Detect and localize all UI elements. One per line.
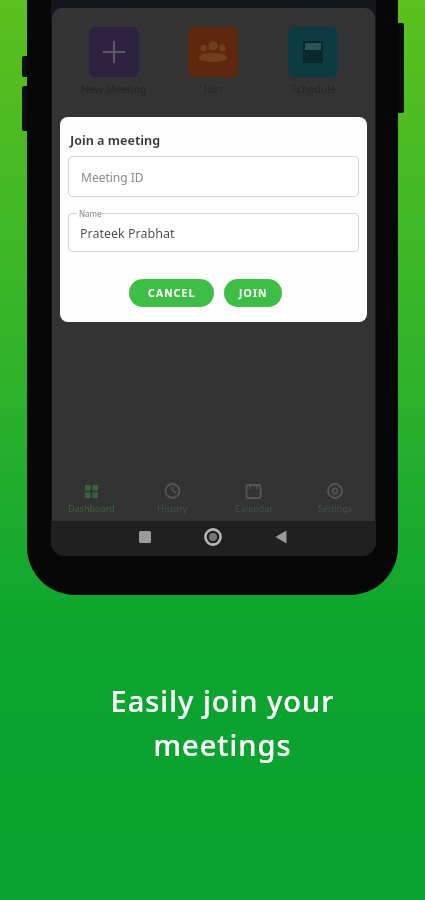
staticText: History	[157, 502, 188, 514]
staticText: CANCEL	[148, 286, 196, 300]
staticText: Calendar	[235, 502, 273, 514]
button[interactable]: CANCEL	[129, 279, 214, 307]
staticText: Join	[204, 82, 223, 96]
staticText: Schedule	[291, 82, 336, 96]
staticText: Easily join your meetings	[10, 681, 425, 764]
button[interactable]: Settings	[294, 483, 376, 517]
staticText: Dashboard	[68, 502, 115, 514]
button[interactable]: Calendar	[213, 483, 294, 517]
button[interactable]: History	[132, 483, 213, 517]
staticText: Settings	[318, 502, 353, 514]
button[interactable]	[288, 27, 338, 77]
staticText: Name	[79, 208, 102, 219]
button[interactable]	[188, 27, 238, 77]
staticText: Prateek Prabhat	[80, 225, 175, 242]
button[interactable]	[89, 27, 139, 77]
staticText: JOIN	[239, 286, 268, 300]
staticText: New Meeting	[81, 82, 147, 96]
button[interactable]: Meeting ID	[68, 156, 359, 197]
button[interactable]: Dashboard	[51, 483, 132, 517]
button[interactable]: Prateek Prabhat	[68, 213, 359, 252]
staticText: Join a meeting	[70, 132, 161, 149]
button[interactable]: JOIN	[224, 279, 282, 307]
staticText: Meeting ID	[81, 169, 144, 185]
